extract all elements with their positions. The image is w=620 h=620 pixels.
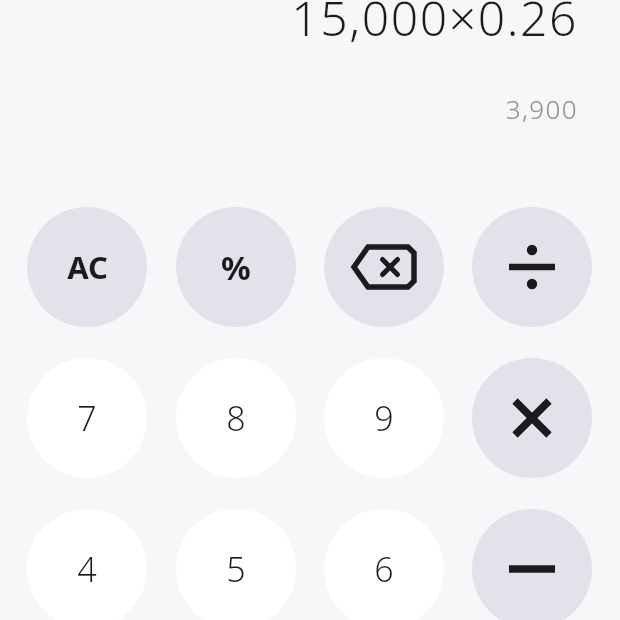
button[interactable]: 4 — [27, 509, 147, 620]
staticText: 6 — [374, 546, 394, 592]
button[interactable]: AC — [27, 207, 147, 327]
button[interactable]: 7 — [27, 358, 147, 478]
button[interactable]: 9 — [324, 358, 444, 478]
button[interactable]: Divide — [472, 207, 592, 327]
staticText: 8 — [226, 395, 246, 441]
button[interactable]: Backspace — [324, 207, 444, 327]
staticText: AC — [67, 246, 108, 288]
button[interactable]: 6 — [324, 509, 444, 620]
staticText: % — [221, 245, 251, 290]
button[interactable]: 5 — [176, 509, 296, 620]
staticText: 15,000×0.26 — [291, 0, 578, 50]
staticText: 5 — [226, 546, 246, 592]
button[interactable]: 8 — [176, 358, 296, 478]
staticText: 3,900 — [505, 91, 578, 126]
button[interactable]: % — [176, 207, 296, 327]
button[interactable]: Minus — [472, 509, 592, 620]
staticText: 7 — [77, 395, 97, 441]
button[interactable]: Multiply — [472, 358, 592, 478]
staticText: 9 — [374, 395, 394, 441]
staticText: 4 — [77, 546, 97, 592]
